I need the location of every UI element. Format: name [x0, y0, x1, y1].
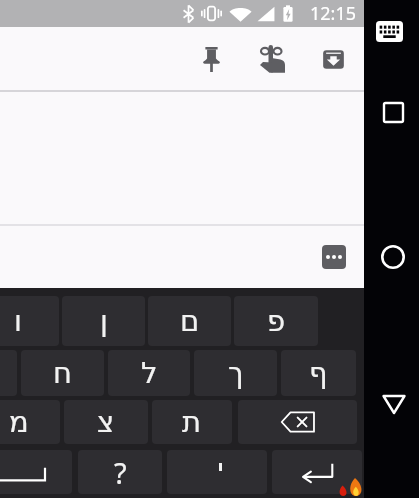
- button[interactable]: Show keyboard: [368, 10, 410, 52]
- button[interactable]: ו: [0, 296, 59, 346]
- button[interactable]: Backspace: [238, 400, 357, 444]
- button[interactable]: ף: [281, 350, 356, 396]
- button[interactable]: ל: [108, 350, 190, 396]
- button[interactable]: Apostrophe: [167, 450, 267, 494]
- button[interactable]: ת: [152, 400, 232, 444]
- staticText: ת: [182, 405, 202, 439]
- staticText: ל: [141, 356, 158, 390]
- button[interactable]: Reminder: [242, 30, 303, 88]
- staticText: ם: [180, 304, 200, 338]
- button[interactable]: Home: [371, 235, 415, 279]
- staticText: ו: [14, 304, 22, 338]
- button[interactable]: ?: [78, 450, 162, 494]
- staticText: ף: [309, 356, 328, 390]
- button[interactable]: Recent apps: [372, 91, 414, 133]
- button[interactable]: מ: [0, 400, 60, 444]
- button[interactable]: ן: [62, 296, 145, 346]
- button[interactable]: פ: [234, 296, 318, 346]
- button[interactable]: ח: [21, 350, 104, 396]
- staticText: פ: [267, 304, 286, 338]
- staticText: ן: [100, 304, 108, 338]
- button[interactable]: Archive: [303, 30, 364, 88]
- button[interactable]: More options: [322, 245, 346, 269]
- staticText: מ: [9, 405, 29, 439]
- button[interactable]: צ: [64, 400, 148, 444]
- staticText: צ: [97, 405, 115, 439]
- other: Space: [0, 466, 45, 484]
- button[interactable]: ם: [148, 296, 231, 346]
- staticText: 12:15: [310, 1, 357, 26]
- button[interactable]: Space: [0, 450, 72, 494]
- button[interactable]: Enter: [272, 450, 362, 494]
- other: Backspace: [281, 411, 315, 433]
- button[interactable]: Back: [372, 382, 416, 426]
- other: Enter: [300, 461, 334, 483]
- staticText: ?: [114, 453, 127, 492]
- staticText: ח: [53, 356, 72, 390]
- staticText: ך: [228, 356, 244, 390]
- button[interactable]: ך: [194, 350, 277, 396]
- button[interactable]: Pin: [181, 30, 242, 88]
